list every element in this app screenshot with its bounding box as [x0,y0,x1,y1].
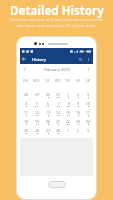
staticText: 10 [86,101,90,106]
staticText: 13 [46,110,50,115]
staticText: 2 [77,92,79,97]
staticText: 22 [66,119,70,124]
staticText: 11 [24,110,28,115]
staticText: 12 [35,110,39,115]
button[interactable]: 29 [31,90,42,99]
button[interactable]: 1 [63,90,73,99]
button[interactable]: 1 [63,126,73,135]
button[interactable]: 28 [53,126,63,135]
staticText: 21 [56,119,60,124]
staticText: 1 [67,92,69,97]
staticText: 30 [46,92,50,97]
button[interactable]: 26 [31,126,42,135]
staticText: February 2018 [44,67,70,72]
staticText: 25 [24,128,28,133]
button[interactable]: More options [84,55,92,63]
staticText: 19 [35,119,39,124]
staticText: SAT [86,79,91,83]
staticText: you have easy access to all of your data… [17,23,96,29]
button[interactable]: 15 [63,108,73,117]
button[interactable]: 7 [53,99,63,108]
staticText: 16 [76,110,80,115]
staticText: 18 [24,119,28,124]
button[interactable]: 16 [73,108,83,117]
button[interactable]: 2 [73,126,83,135]
button[interactable]: Search [76,55,84,63]
staticText: 20 [46,119,50,124]
button[interactable]: 2 [73,90,83,99]
button[interactable]: 20 [42,117,53,126]
staticText: 4 [25,101,27,106]
button[interactable]: 23 [73,117,83,126]
staticText: 26 [35,128,39,133]
staticText: 6 [47,101,49,106]
button[interactable]: 3 [83,126,93,135]
staticText: TUE [45,79,50,83]
staticText: 3 [87,92,89,97]
staticText: 5 [36,101,38,106]
button[interactable]: 12 [31,108,42,117]
staticText: FRI [76,79,80,83]
button[interactable]: 24 [83,117,93,126]
staticText: SUN [23,79,29,83]
button[interactable]: 9 [73,99,83,108]
staticText: 24 [86,119,90,124]
staticText: 3 [87,128,89,133]
staticText: 2 [77,128,79,133]
staticText: WED [55,79,61,83]
button[interactable]: 18 [20,117,31,126]
button[interactable]: Home [48,181,66,188]
staticText: 28 [24,92,28,97]
staticText: Detailed History [10,3,104,19]
staticText: 7 [58,101,60,106]
button[interactable]: 3 [83,90,93,99]
staticText: 14 [56,110,60,115]
staticText: 15 [66,110,70,115]
staticText: 9 [77,101,79,106]
staticText: History [32,57,46,62]
staticText: 28 [56,128,60,133]
button[interactable]: 11 [20,108,31,117]
button[interactable]: Previous month [20,65,29,74]
button[interactable]: 17 [83,108,93,117]
button[interactable]: 5 [31,99,42,108]
staticText: Detailed calendar and bar histories ensu… [10,17,103,23]
button[interactable]: 21 [53,117,63,126]
button[interactable]: 31 [53,90,63,99]
button[interactable]: 19 [31,117,42,126]
button[interactable]: Next month [84,65,93,74]
button[interactable]: 28 [20,90,31,99]
button[interactable]: 10 [83,99,93,108]
staticText: 8 [68,101,70,106]
staticText: 1 [67,128,69,133]
staticText: 23 [76,119,80,124]
staticText: 29 [35,92,39,97]
button[interactable]: 14 [53,108,63,117]
staticText: THU [65,79,71,83]
button[interactable]: 8 [63,99,73,108]
button[interactable]: 4 [20,99,31,108]
button[interactable]: 25 [20,126,31,135]
button[interactable]: 27 [42,126,53,135]
button[interactable]: 13 [42,108,53,117]
button[interactable]: 30 [42,90,53,99]
staticText: 17 [86,110,90,115]
button[interactable]: 22 [63,117,73,126]
staticText: 27 [46,128,50,133]
button[interactable]: Back [20,55,28,63]
button[interactable]: 6 [42,99,53,108]
staticText: MON [33,79,40,83]
staticText: 31 [56,92,60,97]
